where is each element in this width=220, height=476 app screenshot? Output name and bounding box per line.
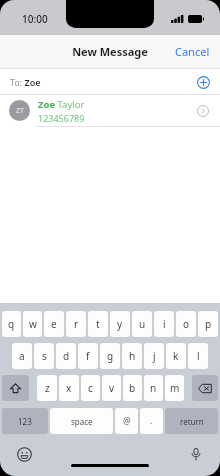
button[interactable]: 123: [2, 408, 48, 434]
button[interactable]: Cancel: [165, 38, 220, 65]
button[interactable]: q: [2, 311, 21, 337]
button[interactable]: r: [66, 311, 86, 337]
button[interactable]: f: [78, 343, 98, 369]
button[interactable]: Dictation: [186, 444, 206, 464]
staticText: y: [117, 317, 123, 331]
staticText: x: [66, 381, 72, 395]
staticText: v: [109, 381, 115, 395]
button[interactable]: c: [81, 375, 100, 401]
button[interactable]: w: [23, 311, 42, 337]
staticText: q: [8, 317, 15, 331]
button[interactable]: g: [100, 343, 120, 369]
button[interactable]: space: [50, 408, 113, 434]
button[interactable]: n: [144, 375, 163, 401]
button[interactable]: @: [115, 408, 138, 434]
button[interactable]: a: [12, 343, 32, 369]
staticText: e: [51, 317, 57, 331]
staticText: z: [45, 381, 50, 395]
button[interactable]: Backspace: [192, 375, 218, 401]
staticText: k: [173, 349, 179, 363]
button[interactable]: Shift: [2, 375, 29, 401]
button[interactable]: p: [198, 311, 218, 337]
staticText: .: [150, 415, 153, 427]
button[interactable]: Emoji: [14, 444, 34, 464]
staticText: f: [86, 349, 90, 363]
staticText: ZT: [16, 106, 24, 116]
staticText: i: [163, 317, 166, 331]
button[interactable]: y: [110, 311, 130, 337]
button[interactable]: u: [132, 311, 152, 337]
button[interactable]: d: [56, 343, 76, 369]
staticText: p: [205, 317, 212, 331]
button[interactable]: j: [144, 343, 164, 369]
staticText: j: [153, 349, 156, 363]
button[interactable]: l: [188, 343, 208, 369]
button[interactable]: k: [166, 343, 186, 369]
staticText: o: [183, 317, 190, 331]
staticText: g: [107, 349, 114, 363]
button[interactable]: m: [165, 375, 184, 401]
button[interactable]: e: [44, 311, 64, 337]
staticText: r: [74, 317, 79, 331]
button[interactable]: s: [34, 343, 54, 369]
button[interactable]: Add contact: [193, 72, 213, 92]
staticText: n: [150, 381, 157, 395]
staticText: return: [180, 416, 204, 427]
staticText: s: [42, 349, 47, 363]
button[interactable]: t: [88, 311, 108, 337]
staticText: u: [139, 317, 146, 331]
staticText: d: [63, 349, 70, 363]
button[interactable]: z: [37, 375, 57, 401]
staticText: a: [19, 349, 25, 363]
button[interactable]: b: [123, 375, 142, 401]
staticText: New Message: [72, 44, 148, 59]
button[interactable]: o: [176, 311, 196, 337]
staticText: b: [129, 381, 136, 395]
button[interactable]: .: [140, 408, 163, 434]
staticText: h: [129, 349, 136, 363]
staticText: 123456789: [38, 112, 85, 124]
staticText: 123: [18, 416, 32, 427]
button[interactable]: i: [154, 311, 174, 337]
staticText: To: Zoe: [10, 76, 41, 88]
staticText: t: [96, 317, 100, 331]
button[interactable]: Contact info: [195, 103, 211, 119]
staticText: 10:00: [22, 12, 48, 26]
staticText: c: [88, 381, 93, 395]
button[interactable]: h: [122, 343, 142, 369]
staticText: m: [170, 381, 180, 395]
button[interactable]: ZT: [0, 95, 220, 126]
button[interactable]: To: Zoe: [0, 69, 220, 94]
button[interactable]: return: [165, 408, 218, 434]
staticText: Cancel: [175, 44, 210, 59]
staticText: Zoe Taylor: [38, 98, 85, 111]
staticText: space: [71, 416, 93, 427]
staticText: l: [197, 349, 200, 363]
button[interactable]: x: [59, 375, 79, 401]
button[interactable]: v: [102, 375, 121, 401]
staticText: @: [123, 415, 131, 427]
staticText: w: [29, 317, 37, 331]
